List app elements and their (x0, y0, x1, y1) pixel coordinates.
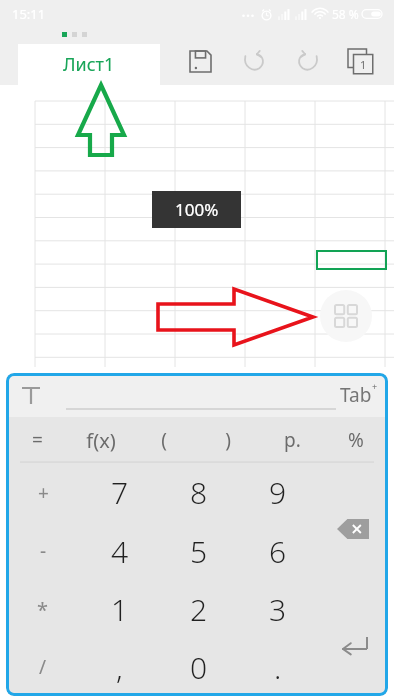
staticText: * (37, 596, 49, 623)
button[interactable]: 0 (159, 638, 238, 696)
staticText: + (38, 480, 49, 506)
button[interactable]: 8 (159, 463, 238, 522)
staticText: 58 % (332, 6, 359, 22)
button[interactable]: Tab (340, 382, 378, 408)
staticText: = (32, 427, 43, 453)
button[interactable]: 9 (238, 463, 317, 522)
button[interactable]: 4 (80, 522, 159, 580)
button[interactable]: Sheets (340, 41, 380, 81)
button[interactable]: - (6, 522, 80, 580)
staticText: 15:11 (12, 5, 46, 23)
button[interactable]: + (6, 463, 80, 522)
staticText: / (39, 654, 47, 680)
button[interactable]: Undo (234, 41, 274, 81)
button[interactable]: p. (260, 417, 324, 463)
button[interactable]: 6 (238, 522, 317, 580)
button[interactable]: 3 (238, 580, 317, 638)
staticText: f(x) (86, 427, 116, 454)
button[interactable]: % (324, 417, 388, 463)
staticText: , (116, 647, 123, 688)
button[interactable]: 1 (80, 580, 159, 638)
staticText: % (348, 427, 364, 453)
staticText: ( (161, 427, 167, 453)
staticText: ) (225, 427, 231, 453)
staticText: Tab (340, 382, 372, 408)
staticText: 7 (111, 472, 129, 513)
button[interactable]: , (80, 638, 159, 696)
staticText: 100% (175, 198, 219, 221)
staticText: p. (284, 427, 301, 453)
button[interactable]: 7 (80, 463, 159, 522)
staticText: 6 (269, 531, 287, 572)
button[interactable]: 5 (159, 522, 238, 580)
staticText: Лист1 (63, 52, 115, 77)
button[interactable]: Backspace (317, 522, 388, 580)
button[interactable]: * (6, 580, 80, 638)
button[interactable]: Save (180, 41, 220, 81)
button[interactable]: / (6, 638, 80, 696)
staticText: 5 (190, 531, 208, 572)
staticText: 1 (111, 589, 129, 630)
button[interactable]: . (238, 638, 317, 696)
button[interactable]: Sheet actions (320, 290, 372, 342)
staticText: 1 (360, 57, 367, 72)
staticText: 9 (269, 472, 287, 513)
button[interactable]: 2 (159, 580, 238, 638)
button[interactable]: ( (132, 417, 196, 463)
button[interactable]: f(x) (69, 417, 132, 463)
staticText: 2 (190, 589, 208, 630)
button[interactable]: = (6, 417, 69, 463)
staticText: 8 (190, 472, 208, 513)
button[interactable]: Redo (288, 41, 328, 81)
staticText: . (274, 647, 282, 688)
button[interactable]: Enter (317, 638, 388, 696)
button[interactable]: Лист1 (18, 44, 160, 85)
staticText: + (372, 380, 378, 392)
staticText: 0 (190, 647, 208, 688)
staticText: 3 (269, 589, 287, 630)
staticText: - (40, 538, 47, 564)
button[interactable]: ) (196, 417, 260, 463)
staticText: 4 (111, 531, 129, 572)
